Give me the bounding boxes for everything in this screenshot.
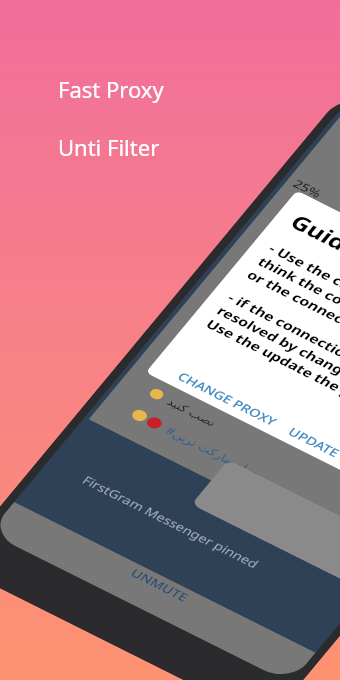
staticText: - if the connection problem is not resol… [193,286,340,445]
staticText: - Use the channel that you think the con… [236,237,340,377]
staticText: UPDATE THE PROXY [280,423,340,496]
staticText: Guide [281,207,340,264]
staticText: Fast Proxy [58,74,164,104]
staticText: FirstGram Messenger pinned [73,471,269,572]
staticText: CHANGE PROXY [171,367,284,429]
staticText: UNMUTE [125,564,195,605]
staticText: 25% [289,175,326,201]
staticText: Unti Filter [58,132,160,162]
staticText: #جوان مارکت ترین [159,422,268,482]
staticText: نصب کنید [162,394,222,430]
